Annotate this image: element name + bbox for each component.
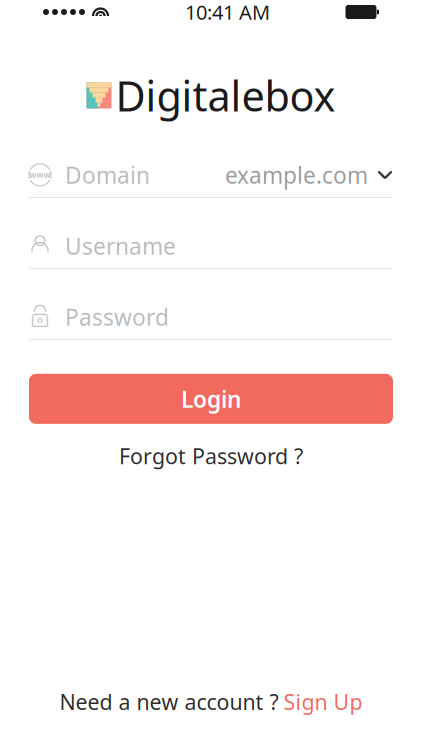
staticText: Need a new account ?	[59, 688, 278, 716]
staticText: Password	[65, 302, 169, 332]
staticText: Digitalebox	[115, 68, 335, 123]
staticText: www	[29, 170, 50, 180]
button[interactable]: Login	[29, 374, 393, 424]
button[interactable]: Need a new account ?	[59, 680, 362, 724]
button[interactable]: www	[29, 153, 393, 198]
button[interactable]: Forgot Password ?	[107, 434, 315, 478]
staticText: Login	[181, 384, 241, 414]
staticText: Sign Up	[283, 688, 362, 716]
staticText: Forgot Password ?	[119, 442, 303, 470]
staticText: example.com	[225, 160, 368, 190]
staticText: Domain	[65, 160, 150, 190]
staticText: 10:41 AM	[185, 0, 270, 25]
staticText: Username	[65, 231, 176, 261]
